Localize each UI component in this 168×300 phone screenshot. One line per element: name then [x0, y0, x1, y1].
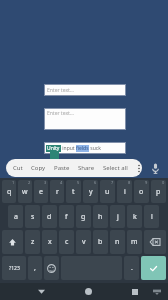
staticText: l — [151, 212, 153, 222]
button[interactable]: Emoji — [44, 256, 59, 280]
button[interactable]: Enter text... — [44, 84, 126, 96]
staticText: Enter text... — [47, 110, 74, 117]
button[interactable]: Select all — [103, 159, 128, 177]
button[interactable]: Share — [78, 159, 95, 177]
staticText: h — [98, 212, 103, 222]
staticText: 8 — [128, 180, 131, 185]
staticText: w — [22, 187, 28, 197]
button[interactable]: j — [110, 205, 125, 228]
staticText: x — [48, 237, 52, 247]
staticText: r — [56, 187, 59, 197]
staticText: suck — [89, 145, 101, 152]
staticText: fields — [76, 145, 89, 152]
button[interactable]: c — [59, 230, 74, 254]
staticText: o — [139, 187, 144, 197]
button[interactable]: Paste — [54, 159, 70, 177]
button[interactable]: Unity — [44, 142, 126, 154]
button[interactable]: w — [18, 180, 32, 203]
button[interactable]: u — [100, 180, 115, 203]
staticText: i — [124, 187, 126, 197]
staticText: u — [105, 187, 110, 197]
button[interactable]: Voice input — [142, 158, 168, 178]
staticText: e — [39, 187, 43, 197]
staticText: b — [98, 237, 103, 247]
staticText: s — [31, 212, 35, 222]
staticText: 3 — [44, 180, 47, 185]
staticText: g — [81, 212, 86, 222]
button[interactable]: Copy — [31, 159, 46, 177]
button[interactable]: i — [117, 180, 132, 203]
button[interactable]: k — [127, 205, 142, 228]
staticText: Copy — [31, 164, 46, 172]
button[interactable]: Enter — [141, 256, 166, 280]
button[interactable]: p — [151, 180, 166, 203]
button[interactable]: Hide keyboard — [148, 283, 166, 300]
staticText: v — [82, 237, 86, 247]
button[interactable]: e — [34, 180, 48, 203]
button[interactable]: . — [124, 256, 139, 280]
staticText: ?123 — [9, 265, 20, 272]
button[interactable]: o — [134, 180, 149, 203]
staticText: Share — [78, 164, 95, 172]
button[interactable]: v — [76, 230, 91, 254]
staticText: . — [131, 263, 133, 273]
staticText: Select all — [103, 164, 128, 172]
button[interactable]: Recents — [126, 283, 144, 300]
staticText: k — [133, 212, 137, 222]
button[interactable]: g — [76, 205, 91, 228]
staticText: 1 — [12, 180, 15, 185]
button[interactable]: Back — [32, 283, 50, 300]
button[interactable]: f — [59, 205, 74, 228]
staticText: 4 — [60, 180, 63, 185]
button[interactable]: Cut — [13, 159, 23, 177]
staticText: , — [34, 263, 36, 273]
button[interactable]: s — [25, 205, 40, 228]
button[interactable]: Backspace — [144, 230, 166, 254]
staticText: t — [72, 187, 75, 197]
button[interactable]: Enter text... — [44, 108, 126, 130]
staticText: d — [47, 212, 52, 222]
button[interactable]: , — [28, 256, 42, 280]
staticText: n — [115, 237, 120, 247]
staticText: c — [65, 237, 69, 247]
button[interactable]: l — [144, 205, 159, 228]
staticText: Unity — [47, 145, 60, 152]
staticText: 5 — [77, 180, 80, 185]
staticText: 0 — [162, 180, 165, 185]
staticText: 7 — [111, 180, 114, 185]
staticText: j — [117, 212, 119, 222]
staticText: a — [14, 212, 18, 222]
button[interactable]: n — [110, 230, 125, 254]
staticText: z — [31, 237, 35, 247]
button[interactable]: Shift — [2, 230, 23, 254]
staticText: y — [89, 187, 93, 197]
button[interactable]: a — [8, 205, 23, 228]
staticText: 9 — [145, 180, 148, 185]
button[interactable]: h — [93, 205, 108, 228]
button[interactable]: b — [93, 230, 108, 254]
button[interactable]: x — [42, 230, 57, 254]
button[interactable]: d — [42, 205, 57, 228]
button[interactable]: More options — [136, 159, 142, 177]
staticText: Paste — [54, 164, 70, 172]
staticText: f — [65, 212, 68, 222]
staticText: q — [7, 187, 12, 197]
staticText: input — [61, 145, 76, 152]
staticText: 6 — [94, 180, 97, 185]
staticText: p — [156, 187, 161, 197]
button[interactable]: Home — [79, 283, 97, 300]
button[interactable]: y — [83, 180, 98, 203]
staticText: 2 — [28, 180, 31, 185]
button[interactable]: m — [127, 230, 142, 254]
staticText: Cut — [13, 164, 23, 172]
staticText: m — [131, 237, 138, 247]
button[interactable]: r — [50, 180, 64, 203]
button[interactable]: t — [66, 180, 81, 203]
button[interactable]: z — [25, 230, 40, 254]
button[interactable]: ?123 — [2, 256, 26, 280]
staticText: Enter text... — [47, 87, 74, 94]
button[interactable]: q — [2, 180, 16, 203]
